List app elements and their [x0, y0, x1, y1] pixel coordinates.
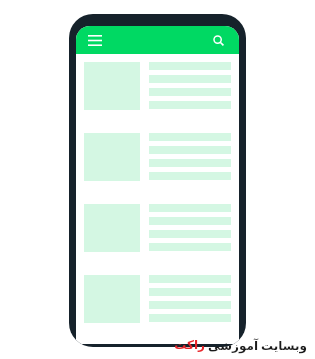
staticText: وبسایت آموزشی	[208, 337, 307, 353]
button[interactable]	[84, 204, 231, 252]
button[interactable]	[84, 133, 231, 181]
staticText: راکت	[174, 338, 205, 352]
button[interactable]	[84, 275, 231, 323]
button[interactable]: Open navigation menu	[86, 31, 104, 49]
button[interactable]: Search	[210, 32, 226, 48]
button[interactable]	[84, 62, 231, 110]
